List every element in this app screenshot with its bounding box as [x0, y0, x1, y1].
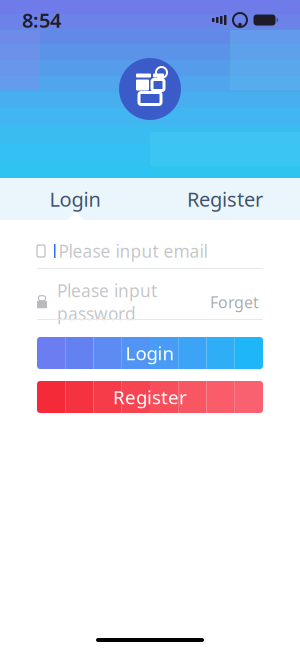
staticText: Login — [125, 341, 174, 365]
staticText: Login — [49, 186, 100, 212]
staticText: Register — [113, 385, 187, 409]
staticText: Please input password — [57, 279, 157, 325]
button[interactable]: Forget — [206, 287, 263, 317]
staticText: Forget — [210, 291, 259, 313]
staticText: 8:54 — [22, 7, 61, 33]
button[interactable]: Login — [0, 178, 150, 220]
staticText: Please input email — [58, 239, 207, 262]
staticText: Register — [187, 186, 263, 212]
button[interactable]: Register — [37, 381, 263, 413]
button[interactable]: Register — [150, 178, 300, 220]
button[interactable]: Login — [37, 337, 263, 369]
